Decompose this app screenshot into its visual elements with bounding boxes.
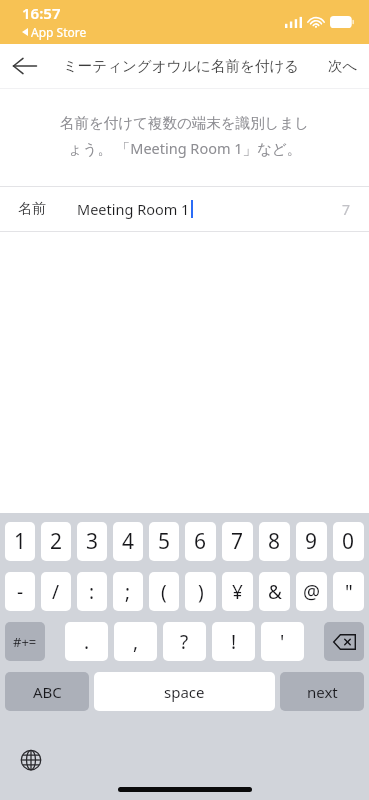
- button[interactable]: space: [94, 672, 275, 711]
- staticText: 3: [86, 527, 99, 556]
- button[interactable]: 5: [149, 522, 179, 561]
- button[interactable]: 名前: [0, 187, 369, 231]
- staticText: 1: [14, 527, 27, 556]
- staticText: 6: [194, 527, 207, 556]
- staticText: ;: [125, 579, 131, 605]
- button[interactable]: ": [333, 572, 364, 611]
- staticText: -: [17, 579, 24, 605]
- button[interactable]: ': [261, 622, 304, 661]
- button[interactable]: 次へ: [317, 44, 369, 88]
- button[interactable]: ,: [114, 622, 157, 661]
- button[interactable]: @: [296, 572, 327, 611]
- staticText: 9: [305, 527, 318, 556]
- button[interactable]: 3: [77, 522, 107, 561]
- staticText: 0: [342, 527, 355, 556]
- button[interactable]: Change keyboard: [14, 743, 48, 777]
- button[interactable]: 7: [222, 522, 253, 561]
- button[interactable]: 2: [41, 522, 71, 561]
- staticText: 名前: [18, 200, 46, 218]
- staticText: #+=: [13, 633, 37, 651]
- button[interactable]: .: [65, 622, 108, 661]
- button[interactable]: #+=: [5, 622, 45, 661]
- button[interactable]: Back: [0, 44, 48, 88]
- staticText: 次へ: [328, 57, 358, 75]
- staticText: 2: [50, 527, 63, 556]
- staticText: !: [231, 629, 237, 655]
- button[interactable]: :: [77, 572, 107, 611]
- staticText: ミーティングオウルに名前を付ける: [63, 57, 300, 75]
- button[interactable]: &: [259, 572, 290, 611]
- staticText: 8: [268, 527, 281, 556]
- button[interactable]: ;: [113, 572, 143, 611]
- button[interactable]: !: [212, 622, 255, 661]
- button[interactable]: -: [5, 572, 35, 611]
- staticText: 7: [231, 527, 244, 556]
- staticText: ,: [133, 629, 139, 655]
- button[interactable]: 4: [113, 522, 143, 561]
- button[interactable]: Backspace: [324, 622, 364, 661]
- button[interactable]: ?: [163, 622, 206, 661]
- button[interactable]: ABC: [5, 672, 89, 711]
- button[interactable]: next: [280, 672, 364, 711]
- staticText: ¥: [232, 579, 243, 605]
- staticText: ?: [180, 629, 189, 655]
- staticText: ): [198, 579, 204, 605]
- staticText: /: [52, 579, 60, 605]
- staticText: ABC: [33, 682, 62, 702]
- staticText: 7: [342, 200, 351, 219]
- staticText: Meeting Room 1: [77, 199, 190, 219]
- staticText: &: [268, 579, 282, 605]
- staticText: ": [345, 579, 353, 605]
- button[interactable]: /: [41, 572, 71, 611]
- staticText: .: [84, 629, 90, 655]
- button[interactable]: 6: [185, 522, 216, 561]
- staticText: 4: [122, 527, 135, 556]
- button[interactable]: 1: [5, 522, 35, 561]
- staticText: App Store: [31, 24, 87, 40]
- staticText: (: [161, 579, 167, 605]
- staticText: 5: [158, 527, 171, 556]
- staticText: space: [164, 682, 205, 702]
- button[interactable]: (: [149, 572, 179, 611]
- button[interactable]: 0: [333, 522, 364, 561]
- staticText: :: [89, 579, 95, 605]
- staticText: next: [307, 682, 338, 702]
- staticText: 16:57: [22, 3, 61, 23]
- staticText: 名前を付けて複数の端末を識別しまし ょう。 「Meeting Room 1」など…: [30, 114, 339, 158]
- button[interactable]: 8: [259, 522, 290, 561]
- button[interactable]: 9: [296, 522, 327, 561]
- staticText: ': [280, 629, 285, 655]
- button[interactable]: ¥: [222, 572, 253, 611]
- staticText: @: [303, 579, 321, 605]
- button[interactable]: ): [185, 572, 216, 611]
